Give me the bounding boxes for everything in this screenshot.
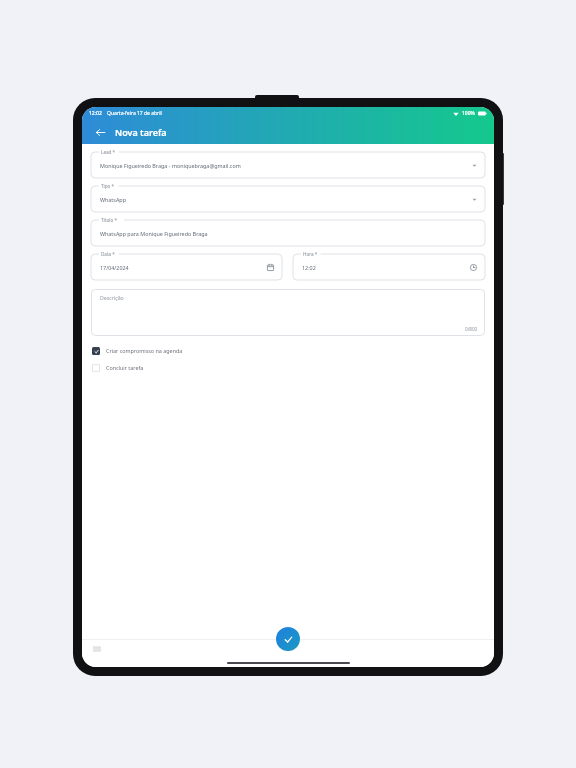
button[interactable]: Descrição — [91, 289, 485, 336]
staticText: Lead * — [101, 149, 116, 155]
staticText: Criar compromisso na agenda — [106, 347, 183, 354]
staticText: Título * — [101, 217, 117, 223]
staticText: Data * — [101, 251, 115, 257]
staticText: Nova tarefa — [115, 126, 167, 138]
button[interactable]: Hora * — [293, 254, 485, 280]
button[interactable]: Tipo * — [91, 186, 485, 212]
staticText: Hora * — [303, 251, 318, 257]
button[interactable]: Lead * — [91, 152, 485, 178]
button[interactable]: Salvar — [276, 627, 300, 651]
staticText: Tipo * — [101, 183, 115, 189]
button[interactable]: Voltar — [91, 123, 109, 141]
button[interactable]: Menu — [90, 642, 104, 656]
staticText: WhatsApp — [100, 196, 126, 203]
staticText: Quarta-feira 17 de abril — [107, 110, 162, 117]
button[interactable]: Criar compromisso na agenda — [91, 346, 485, 355]
button[interactable]: Concluir tarefa — [91, 363, 485, 372]
staticText: 100% — [462, 110, 475, 117]
staticText: Monique Figueiredo Braga - moniquebraga@… — [100, 162, 241, 169]
staticText: Descrição — [100, 294, 124, 301]
button[interactable]: Data * — [91, 254, 282, 280]
staticText: Concluir tarefa — [106, 364, 144, 371]
staticText: WhatsApp para Monique Figueiredo Braga — [100, 230, 208, 237]
staticText: 12:02 — [89, 110, 102, 117]
button[interactable]: Título * — [91, 220, 485, 246]
staticText: 0/800 — [465, 326, 478, 332]
staticText: 12:02 — [302, 264, 316, 271]
staticText: 17/04/2024 — [100, 264, 129, 271]
